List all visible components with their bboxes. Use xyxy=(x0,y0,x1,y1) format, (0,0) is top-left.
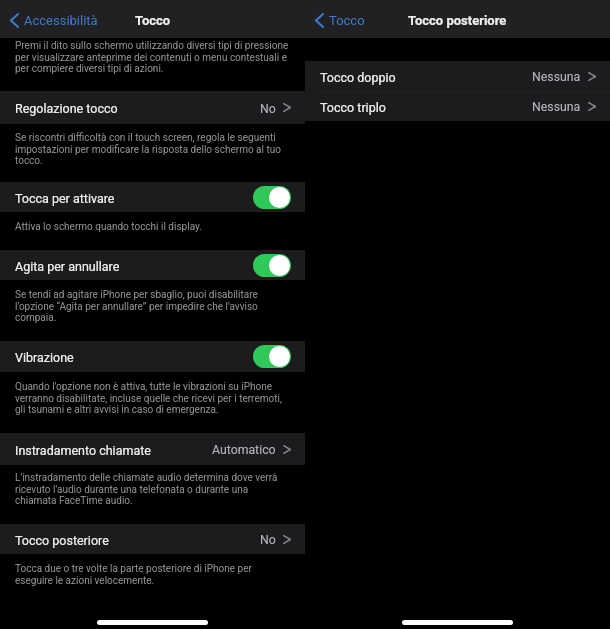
button[interactable]: Tocco posteriore xyxy=(0,524,305,554)
staticText: No xyxy=(260,533,276,547)
staticText: Instradamento chiamate xyxy=(15,443,151,458)
staticText: Tocco doppio xyxy=(320,70,396,85)
staticText: Nessuna xyxy=(532,100,581,114)
button[interactable]: Attivo xyxy=(253,254,291,277)
staticText: Tocco posteriore xyxy=(408,13,507,28)
staticText: Tocco triplo xyxy=(320,100,386,115)
button[interactable]: Attivo xyxy=(253,345,291,368)
staticText: Tocco posteriore xyxy=(15,533,109,548)
button[interactable]: Indietro: Tocco xyxy=(305,0,375,38)
staticText: Tocca due o tre volte la parte posterior… xyxy=(15,563,290,587)
button[interactable]: Regolazione tocco xyxy=(0,91,305,124)
staticText: Tocco xyxy=(135,13,171,28)
button[interactable]: Attivo xyxy=(253,186,291,209)
staticText: Agita per annullare xyxy=(15,259,120,274)
button[interactable]: Vibrazione xyxy=(0,341,305,372)
staticText: Quando l'opzione non è attiva, tutte le … xyxy=(15,381,290,416)
button[interactable]: Indietro: Accessibilità xyxy=(0,0,108,38)
staticText: Attiva lo schermo quando tocchi il displ… xyxy=(15,221,202,233)
staticText: Accessibilità xyxy=(24,13,98,28)
staticText: No xyxy=(260,102,276,116)
button[interactable]: Tocca per attivare xyxy=(0,182,305,212)
button[interactable]: Tocco triplo xyxy=(305,91,610,121)
staticText: Vibrazione xyxy=(15,350,74,365)
staticText: Automatico xyxy=(212,443,276,457)
staticText: Se riscontri difficoltà con il touch scr… xyxy=(15,132,290,167)
button[interactable]: Tocco doppio xyxy=(305,61,610,91)
staticText: Nessuna xyxy=(532,70,581,84)
staticText: Regolazione tocco xyxy=(15,101,118,116)
staticText: Premi il dito sullo schermo utilizzando … xyxy=(15,40,290,75)
staticText: L'instradamento delle chiamate audio det… xyxy=(15,472,290,507)
staticText: Tocca per attivare xyxy=(15,191,115,206)
staticText: Se tendi ad agitare iPhone per sbaglio, … xyxy=(15,289,290,324)
button[interactable]: Agita per annullare xyxy=(0,250,305,280)
staticText: Tocco xyxy=(329,13,365,28)
button[interactable]: Instradamento chiamate xyxy=(0,433,305,465)
